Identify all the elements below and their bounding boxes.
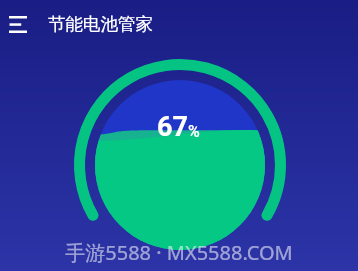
button[interactable]: Menu xyxy=(9,16,27,33)
staticText: 节能电池管家 xyxy=(48,13,153,35)
staticText: 手游5588 · MX5588.COM xyxy=(65,239,293,266)
staticText: 67 xyxy=(157,111,188,143)
staticText: % xyxy=(188,122,200,141)
